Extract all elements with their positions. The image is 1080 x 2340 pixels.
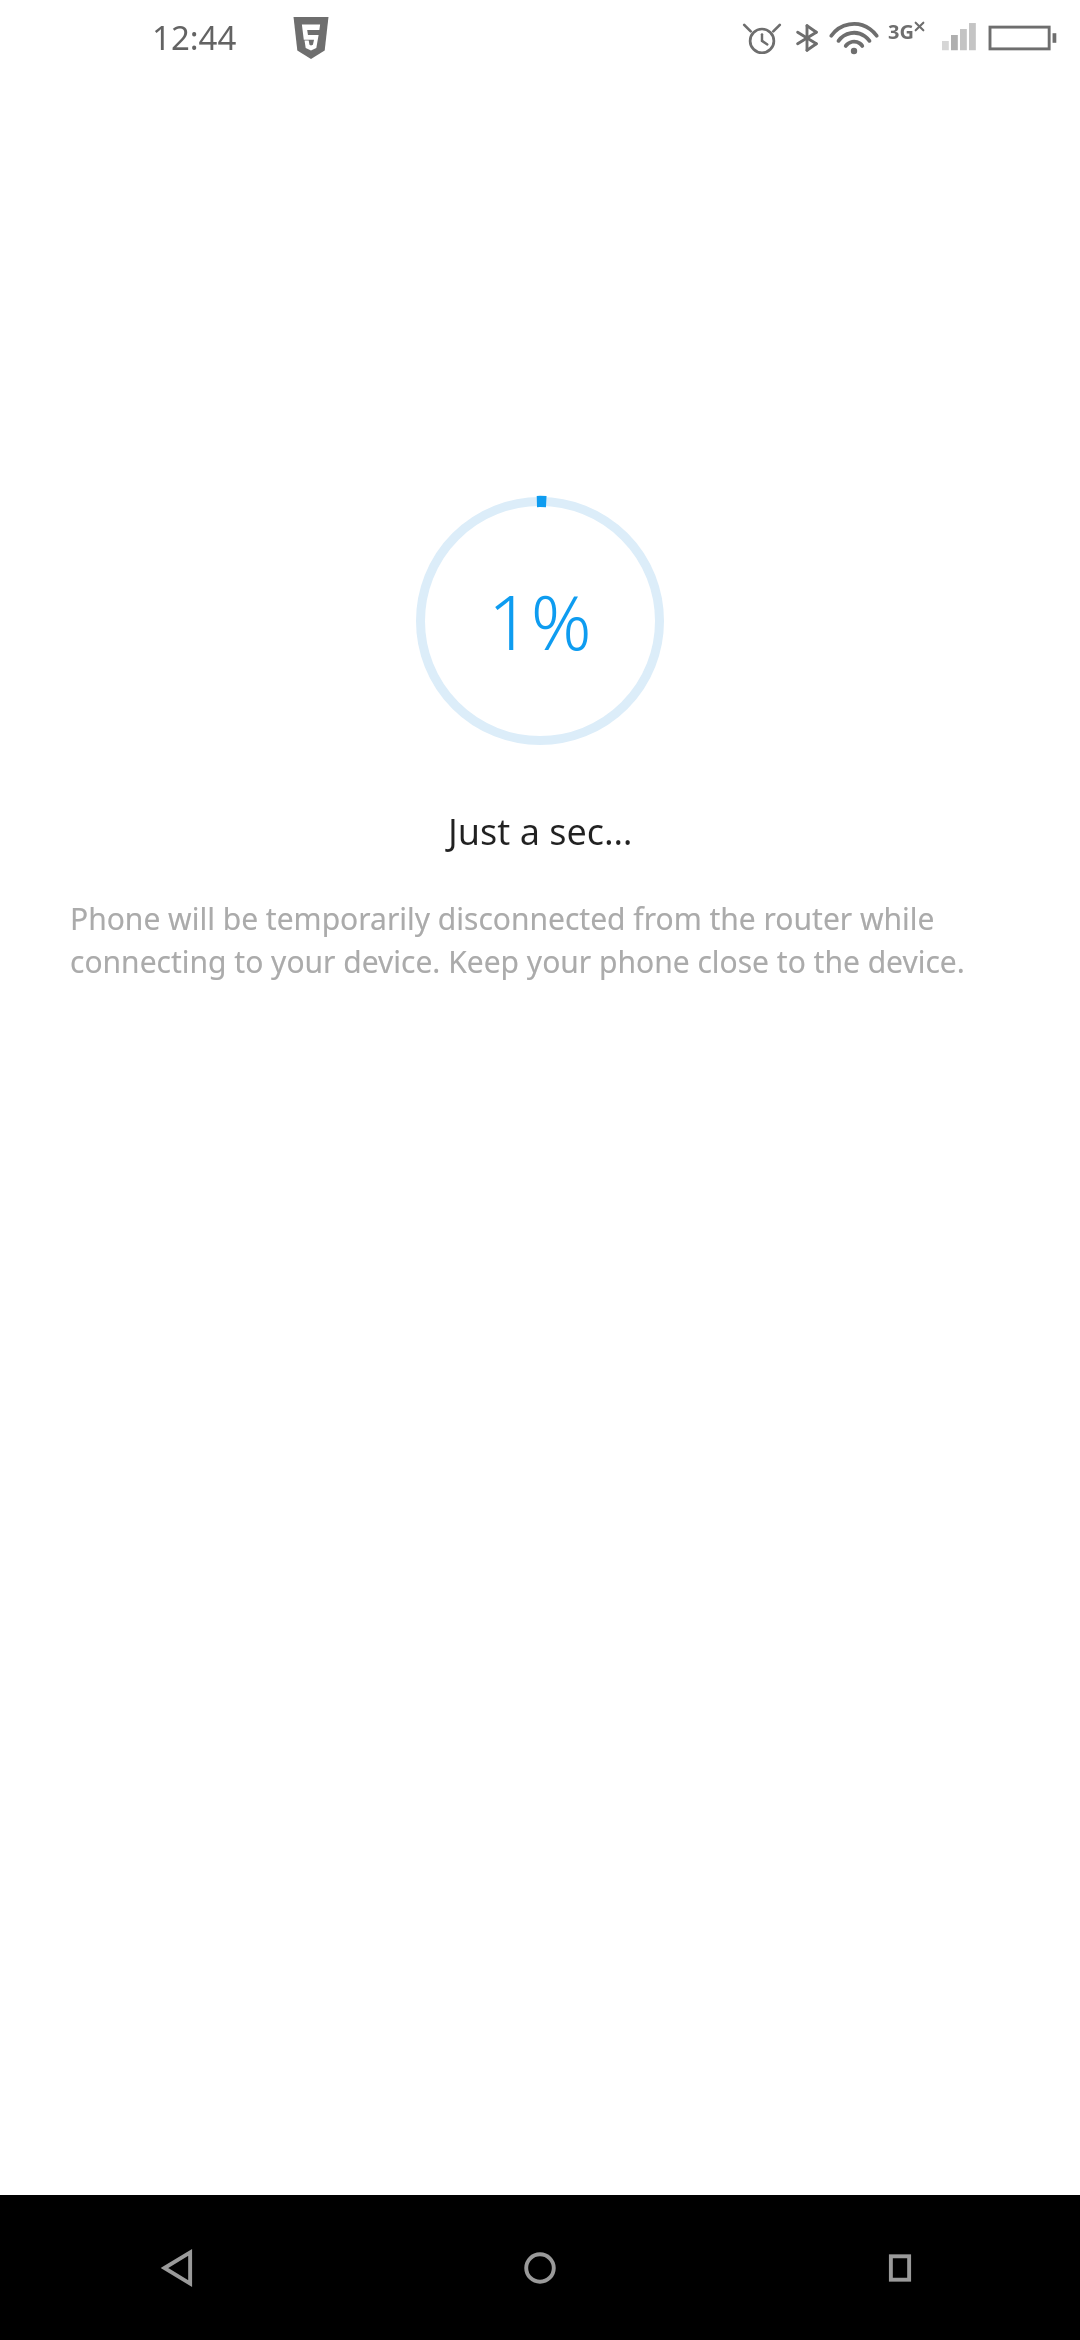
button[interactable]: Back xyxy=(0,2195,360,2340)
staticText: 3G xyxy=(888,18,914,45)
staticText: Just a sec… xyxy=(448,807,633,856)
staticText: Phone will be temporarily disconnected f… xyxy=(70,898,1020,982)
button[interactable]: Recent apps xyxy=(720,2195,1080,2340)
staticText: 1% xyxy=(488,570,592,672)
button[interactable]: Home xyxy=(360,2195,720,2340)
staticText: 12:44 xyxy=(152,15,237,60)
